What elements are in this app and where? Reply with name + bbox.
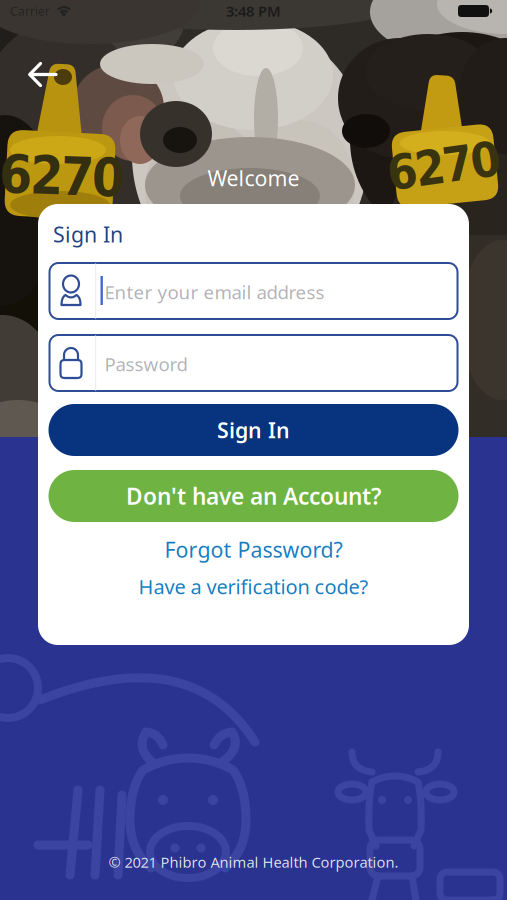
button[interactable]: Sign In [48, 404, 458, 456]
staticText: Password [104, 351, 187, 376]
button[interactable]: Enter your email address [48, 262, 458, 320]
button[interactable]: Password [48, 334, 458, 392]
button[interactable]: Have a verification code? [138, 573, 368, 600]
staticText: © 2021 Phibro Animal Health Corporation. [108, 852, 398, 872]
staticText: 6270 [0, 145, 125, 207]
staticText: Have a verification code? [138, 573, 368, 600]
staticText: Carrier [10, 3, 50, 19]
button[interactable]: Back [28, 62, 58, 87]
staticText: 3:48 PM [226, 1, 281, 21]
staticText: Sign In [217, 416, 290, 444]
button[interactable]: Don't have an Account? [48, 470, 458, 522]
staticText: Enter your email address [104, 279, 324, 304]
button[interactable]: Forgot Password? [164, 535, 342, 564]
staticText: Forgot Password? [164, 535, 342, 564]
staticText: Welcome [207, 164, 299, 192]
staticText: Don't have an Account? [126, 481, 381, 511]
staticText: 6270 [387, 138, 501, 194]
staticText: Sign In [53, 220, 123, 248]
